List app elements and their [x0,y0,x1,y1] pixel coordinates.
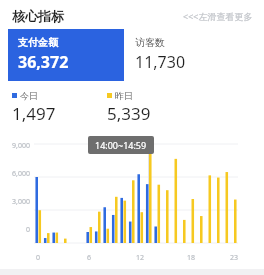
staticText: 访客数 [135,36,165,49]
staticText: 支付金额 [18,36,58,49]
staticText: 18 [183,253,199,263]
staticText: 36,372 [18,51,69,73]
button[interactable]: <<<左滑查看更多 [183,10,253,22]
staticText: 昨日 [115,90,133,101]
staticText: 6 [81,253,97,263]
staticText: 3,000 [1,197,30,207]
button[interactable]: Time range tooltip 14:00-14:59 [88,136,154,154]
staticText: 今日 [20,90,38,101]
staticText: 14:00~14:59 [95,139,147,151]
staticText: 5,339 [107,102,151,125]
staticText: 0 [1,225,30,235]
button[interactable]: 支付金额 [8,29,124,81]
staticText: 23 [226,253,242,263]
staticText: 1,497 [12,102,56,125]
button[interactable]: 访客数 [124,29,256,81]
staticText: 核心指标 [12,8,64,24]
staticText: 12 [132,253,148,263]
staticText: 6,000 [1,169,30,179]
staticText: 9,000 [1,141,30,151]
staticText: 11,730 [135,51,186,73]
staticText: 0 [30,253,46,263]
staticText: <<<左滑查看更多 [183,10,253,22]
